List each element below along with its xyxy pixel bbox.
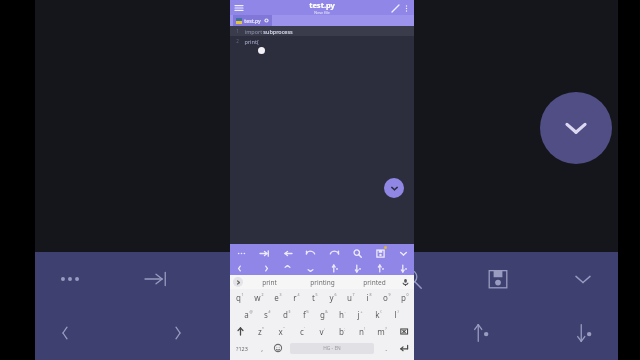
button[interactable]: Undo (303, 246, 317, 260)
button[interactable]: Emoji (270, 339, 286, 357)
staticText: h (339, 309, 344, 320)
staticText: . (385, 344, 387, 353)
staticText: , (261, 344, 263, 353)
button[interactable]: Enter (394, 339, 414, 357)
staticText: 7 (352, 292, 355, 297)
button[interactable]: u (342, 289, 360, 306)
button[interactable]: printing (296, 275, 348, 289)
button[interactable]: e (268, 289, 287, 306)
staticText: print( (244, 38, 259, 45)
button[interactable]: Scroll to bottom (384, 178, 404, 198)
button[interactable]: Hide toolbar (396, 246, 410, 260)
button[interactable]: Left (234, 261, 248, 275)
button[interactable]: s (258, 306, 277, 323)
button[interactable]: l (387, 306, 405, 323)
button[interactable]: Up (280, 261, 294, 275)
button[interactable]: f (296, 306, 315, 323)
button[interactable]: p (396, 289, 414, 306)
button[interactable]: a (239, 306, 258, 323)
button[interactable]: Scroll down (540, 92, 612, 164)
staticText: b (339, 326, 344, 337)
button[interactable]: Voice input (400, 277, 410, 287)
staticText: 5 (315, 292, 318, 297)
button[interactable]: i (360, 289, 378, 306)
button[interactable]: Search (350, 246, 364, 260)
button[interactable]: Save (373, 246, 387, 260)
staticText: m (377, 326, 385, 337)
button[interactable]: Unindent (280, 246, 294, 260)
button[interactable]: Copy down (396, 261, 410, 275)
button[interactable]: b (332, 323, 352, 339)
button[interactable]: k (369, 306, 387, 323)
button[interactable]: , (254, 339, 270, 357)
button[interactable]: Down (303, 261, 317, 275)
button[interactable]: ?123 (230, 339, 254, 357)
button[interactable]: Expand suggestions (233, 277, 243, 287)
button[interactable]: Copy up (373, 261, 387, 275)
button[interactable]: Indent (257, 246, 271, 260)
button[interactable]: x (271, 323, 292, 339)
button[interactable]: HG - EN (290, 343, 374, 354)
button[interactable]: w (249, 289, 268, 306)
staticText: * (262, 326, 264, 331)
staticText: p (401, 292, 406, 303)
button[interactable]: h (333, 306, 351, 323)
staticText: + (360, 309, 363, 314)
button[interactable]: More (234, 246, 248, 260)
button[interactable]: n (352, 323, 372, 339)
staticText: ?123 (236, 345, 248, 352)
staticText: o (383, 292, 388, 303)
button[interactable]: Shift (230, 323, 250, 339)
staticText: % (306, 309, 309, 314)
button[interactable]: g (315, 306, 333, 323)
staticText: j (357, 309, 360, 320)
staticText: ( (380, 309, 382, 314)
staticText: 4 (297, 292, 300, 297)
staticText: " (283, 326, 285, 331)
button[interactable]: Move up (327, 261, 341, 275)
button[interactable]: v (312, 323, 332, 339)
button[interactable]: print (243, 275, 296, 289)
staticText: a (244, 309, 249, 320)
button[interactable]: c (292, 323, 312, 339)
staticText: i (366, 292, 369, 303)
button[interactable]: t (306, 289, 324, 306)
staticText: ) (397, 309, 399, 314)
staticText: v (319, 326, 324, 337)
button[interactable]: Edit (389, 2, 401, 14)
staticText: $ (288, 309, 291, 314)
button[interactable]: d (277, 306, 296, 323)
button[interactable]: More options (401, 3, 411, 13)
staticText: : (324, 326, 325, 331)
staticText: t (312, 292, 315, 303)
button[interactable]: y (324, 289, 342, 306)
staticText: f (303, 309, 306, 320)
staticText: - (344, 309, 346, 314)
staticText: w (254, 292, 261, 303)
button[interactable]: z (250, 323, 271, 339)
button[interactable]: Right (257, 261, 271, 275)
staticText: printed (363, 278, 386, 287)
button[interactable]: Move down (350, 261, 364, 275)
button[interactable]: j (351, 306, 369, 323)
staticText: import (244, 28, 263, 35)
staticText: 6 (334, 292, 337, 297)
staticText: q (236, 292, 241, 303)
staticText: k (375, 309, 380, 320)
staticText: z (258, 326, 262, 337)
button[interactable]: m (372, 323, 392, 339)
button[interactable]: r (287, 289, 306, 306)
button[interactable]: q (230, 289, 249, 306)
button[interactable]: printed (348, 275, 400, 289)
button[interactable]: test.py (236, 15, 269, 26)
staticText: test.py (244, 17, 261, 24)
button[interactable]: . (378, 339, 394, 357)
staticText: g (320, 309, 325, 320)
staticText: 1 (236, 28, 239, 34)
staticText: 1 (241, 292, 244, 297)
button[interactable]: Redo (327, 246, 341, 260)
button[interactable]: Backspace (392, 323, 414, 339)
button[interactable]: o (378, 289, 396, 306)
staticText: u (347, 292, 352, 303)
button[interactable]: Menu (233, 2, 245, 14)
